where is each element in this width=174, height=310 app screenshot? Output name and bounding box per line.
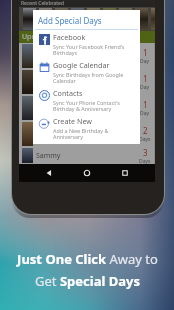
staticText: 1 (143, 99, 148, 110)
staticText: Day (140, 110, 150, 117)
staticText: Joseph (36, 51, 59, 61)
staticText: Recent Celebrated (21, 0, 64, 7)
staticText: Sync Your Phone Contact's Birthday & Ann… (53, 99, 120, 112)
staticText: Days (139, 136, 151, 143)
staticText: 3 (143, 147, 148, 158)
staticText: Sync Your Facebook Friend's Birthdays (53, 43, 125, 56)
staticText: Martha (36, 77, 60, 87)
staticText: Google Calendar (53, 60, 110, 70)
staticText: Day (140, 84, 150, 91)
staticText: Sarah (36, 129, 55, 139)
button[interactable]: Joseph (19, 43, 155, 69)
button[interactable]: Home (79, 165, 95, 181)
staticText: Sammy (36, 151, 61, 161)
staticText: Contacts (53, 88, 83, 98)
button[interactable]: Facebook (39, 32, 139, 58)
staticText: Add Special Days (38, 15, 102, 26)
button[interactable]: Martha (19, 69, 155, 95)
staticText: 1 (143, 47, 148, 58)
staticText: Create New (53, 116, 92, 126)
staticText: Day (140, 58, 150, 65)
staticText: 2 (143, 125, 148, 136)
staticText: Get Special Days (35, 272, 140, 290)
button[interactable]: Recent apps (117, 165, 133, 181)
button[interactable]: Back (41, 165, 57, 181)
staticText: Facebook (53, 32, 86, 42)
button[interactable]: Alice (19, 95, 155, 121)
staticText: Just One Click Away to (17, 250, 158, 268)
staticText: 1 (143, 73, 148, 84)
button[interactable]: Create New (39, 116, 139, 142)
button[interactable]: Contacts (39, 88, 139, 114)
button[interactable]: Sammy (19, 147, 155, 164)
button[interactable]: Google Calendar (39, 60, 139, 86)
button[interactable]: Sarah (19, 121, 155, 147)
staticText: Upcoming (22, 32, 56, 42)
staticText: Add a New Birthday & Anniversary (53, 127, 139, 140)
staticText: Sync Birthdays from Google Calendar (53, 71, 124, 84)
staticText: Days (139, 158, 151, 164)
